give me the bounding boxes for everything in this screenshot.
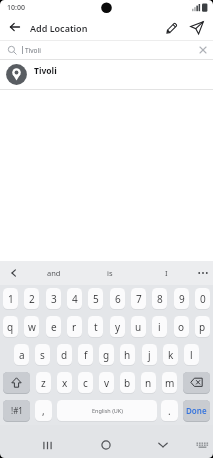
button[interactable]: I: [140, 261, 192, 285]
staticText: 5: [93, 292, 99, 306]
staticText: Done: [186, 405, 207, 416]
button[interactable]: [4, 17, 26, 39]
button[interactable]: 4: [67, 288, 82, 309]
staticText: .: [168, 404, 171, 418]
staticText: ,: [42, 404, 45, 418]
button[interactable]: 7: [131, 288, 146, 309]
button[interactable]: [183, 372, 210, 393]
staticText: d: [61, 348, 68, 362]
button[interactable]: c: [78, 372, 93, 393]
button[interactable]: .: [161, 400, 178, 421]
button[interactable]: i: [152, 316, 167, 337]
button[interactable]: Tivoli: [0, 60, 213, 89]
staticText: o: [178, 320, 185, 334]
button[interactable]: 9: [174, 288, 189, 309]
button[interactable]: j: [142, 344, 157, 365]
button[interactable]: [192, 435, 212, 455]
button[interactable]: d: [57, 344, 72, 365]
staticText: t: [94, 320, 98, 334]
staticText: is: [107, 268, 113, 278]
staticText: m: [165, 376, 175, 390]
staticText: 2: [29, 292, 35, 306]
button[interactable]: n: [141, 372, 156, 393]
button[interactable]: o: [174, 316, 189, 337]
button[interactable]: k: [163, 344, 178, 365]
staticText: s: [40, 348, 45, 362]
staticText: 8: [157, 292, 163, 306]
staticText: k: [168, 348, 174, 362]
button[interactable]: a: [14, 344, 29, 365]
button[interactable]: r: [67, 316, 82, 337]
button[interactable]: 8: [152, 288, 167, 309]
staticText: I: [165, 268, 168, 278]
button[interactable]: y: [110, 316, 125, 337]
staticText: x: [62, 376, 68, 390]
staticText: u: [135, 320, 142, 334]
button[interactable]: 0: [195, 288, 210, 309]
button[interactable]: l: [184, 344, 199, 365]
button[interactable]: is: [80, 261, 140, 285]
staticText: 3: [51, 292, 57, 306]
staticText: i: [158, 320, 161, 334]
staticText: w: [28, 320, 36, 334]
staticText: !#1: [11, 405, 23, 416]
staticText: p: [199, 320, 206, 334]
staticText: b: [124, 376, 131, 390]
button[interactable]: p: [195, 316, 210, 337]
staticText: English (UK): [92, 407, 123, 414]
button[interactable]: 6: [110, 288, 125, 309]
button[interactable]: z: [36, 372, 51, 393]
button[interactable]: 5: [88, 288, 103, 309]
button[interactable]: [159, 16, 183, 40]
button[interactable]: 3: [46, 288, 61, 309]
button[interactable]: [185, 16, 209, 40]
staticText: n: [145, 376, 152, 390]
button[interactable]: t: [88, 316, 103, 337]
button[interactable]: English (UK): [57, 400, 157, 421]
staticText: 7: [136, 292, 142, 306]
button[interactable]: [96, 435, 116, 455]
staticText: 10:00: [7, 3, 25, 13]
button[interactable]: [0, 261, 28, 285]
staticText: e: [51, 320, 57, 334]
staticText: f: [84, 348, 88, 362]
button[interactable]: Done: [183, 400, 210, 421]
button[interactable]: q: [3, 316, 18, 337]
button[interactable]: 2: [24, 288, 39, 309]
staticText: c: [83, 376, 88, 390]
button[interactable]: !#1: [3, 400, 30, 421]
staticText: 1: [8, 292, 14, 306]
staticText: Tivoli: [34, 65, 57, 77]
staticText: a: [19, 348, 25, 362]
button[interactable]: w: [24, 316, 39, 337]
staticText: g: [103, 348, 110, 362]
button[interactable]: m: [162, 372, 177, 393]
button[interactable]: [153, 435, 173, 455]
button[interactable]: g: [99, 344, 114, 365]
button[interactable]: [37, 435, 57, 455]
button[interactable]: [192, 261, 213, 285]
staticText: 0: [200, 292, 206, 306]
button[interactable]: h: [120, 344, 135, 365]
button[interactable]: b: [120, 372, 135, 393]
button[interactable]: [199, 46, 207, 54]
staticText: l: [190, 348, 193, 362]
staticText: Tivoli: [25, 46, 41, 55]
staticText: j: [148, 348, 151, 362]
button[interactable]: 1: [3, 288, 18, 309]
button[interactable]: ,: [35, 400, 52, 421]
button[interactable]: e: [46, 316, 61, 337]
staticText: Add Location: [30, 22, 88, 34]
staticText: r: [72, 320, 77, 334]
staticText: 6: [115, 292, 121, 306]
button[interactable]: x: [57, 372, 72, 393]
button[interactable]: v: [99, 372, 114, 393]
staticText: y: [115, 320, 121, 334]
button[interactable]: Tivoli: [0, 41, 213, 59]
button[interactable]: and: [28, 261, 80, 285]
button[interactable]: u: [131, 316, 146, 337]
staticText: 4: [72, 292, 78, 306]
button[interactable]: f: [78, 344, 93, 365]
button[interactable]: s: [35, 344, 50, 365]
button[interactable]: [3, 372, 30, 393]
